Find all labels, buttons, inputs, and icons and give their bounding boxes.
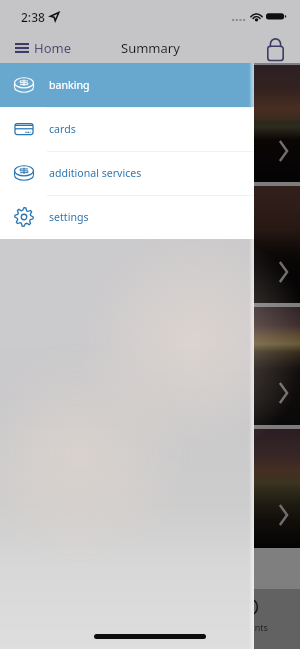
staticText: cards [49,122,76,136]
staticText: additional services [49,166,142,180]
button[interactable]: banking [0,63,254,107]
staticText: Summary [121,39,180,57]
button[interactable]: home [4,589,99,649]
staticText: settings [49,210,89,224]
staticText: accounts [230,621,268,633]
button[interactable] [0,186,300,303]
button[interactable]: additional services [0,151,254,195]
button[interactable] [0,429,300,548]
staticText: banking [49,78,90,92]
button[interactable] [0,307,300,425]
button[interactable]: accounts [201,589,296,649]
button[interactable]: Home [15,39,71,57]
button[interactable]: settings [0,195,254,239]
button[interactable]: transfers [103,589,198,649]
button[interactable] [0,65,300,182]
staticText: 2:38 [21,9,45,25]
staticText: Home [34,39,71,57]
button[interactable]: Lock [261,34,289,62]
button[interactable]: cards [0,107,254,151]
